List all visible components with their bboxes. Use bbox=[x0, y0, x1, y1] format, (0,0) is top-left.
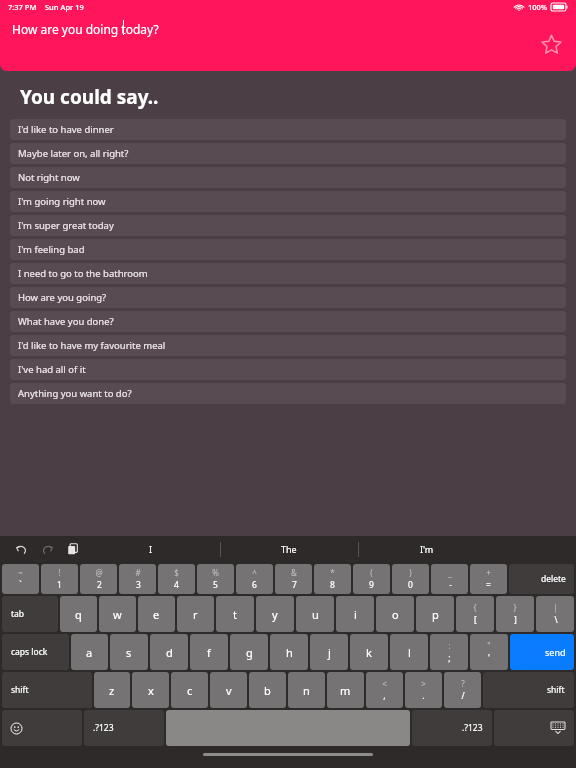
button[interactable]: How are you going? bbox=[10, 287, 566, 308]
button[interactable]: x bbox=[132, 672, 169, 708]
button[interactable]: < bbox=[366, 672, 403, 708]
button[interactable]: y bbox=[256, 596, 294, 632]
staticText: + bbox=[486, 567, 491, 578]
button[interactable]: Not right now bbox=[10, 167, 566, 188]
button[interactable]: n bbox=[288, 672, 325, 708]
button[interactable]: + bbox=[470, 564, 507, 594]
button[interactable]: Favourite bbox=[536, 29, 566, 59]
button[interactable]: s bbox=[110, 634, 148, 670]
button[interactable]: # bbox=[119, 564, 156, 594]
staticText: = bbox=[486, 579, 491, 591]
button[interactable]: $ bbox=[158, 564, 195, 594]
staticText: / bbox=[461, 690, 465, 702]
staticText: h bbox=[286, 645, 293, 660]
staticText: x bbox=[148, 683, 154, 698]
button[interactable]: u bbox=[296, 596, 334, 632]
button[interactable]: e bbox=[138, 596, 175, 632]
button[interactable]: Paste bbox=[62, 538, 84, 560]
button[interactable]: p bbox=[416, 596, 454, 632]
button[interactable]: | bbox=[536, 596, 574, 632]
button[interactable]: r bbox=[177, 596, 214, 632]
button[interactable]: % bbox=[197, 564, 234, 594]
staticText: t bbox=[233, 607, 237, 622]
button[interactable]: I'm going right now bbox=[10, 191, 566, 212]
button[interactable]: d bbox=[150, 634, 188, 670]
button[interactable]: c bbox=[171, 672, 208, 708]
staticText: m bbox=[340, 683, 351, 698]
button[interactable]: k bbox=[350, 634, 388, 670]
button[interactable]: Redo bbox=[36, 538, 58, 560]
button[interactable]: Undo bbox=[10, 538, 32, 560]
button[interactable]: I'm super great today bbox=[10, 215, 566, 236]
button[interactable]: shift bbox=[2, 672, 92, 708]
button[interactable]: caps lock bbox=[2, 634, 69, 670]
button[interactable]: { bbox=[456, 596, 494, 632]
button[interactable]: q bbox=[60, 596, 97, 632]
button[interactable]: & bbox=[275, 564, 312, 594]
staticText: p bbox=[432, 607, 439, 622]
button[interactable]: j bbox=[310, 634, 348, 670]
button[interactable]: : bbox=[430, 634, 468, 670]
staticText: tab bbox=[11, 608, 25, 620]
button[interactable]: ^ bbox=[236, 564, 273, 594]
staticText: - bbox=[449, 579, 452, 591]
button[interactable]: } bbox=[496, 596, 534, 632]
button[interactable]: b bbox=[249, 672, 286, 708]
staticText: I'm bbox=[420, 543, 434, 555]
button[interactable]: I'd like to have dinner bbox=[10, 119, 566, 140]
button[interactable]: I'd like to have my favourite meal bbox=[10, 335, 566, 356]
button[interactable]: o bbox=[376, 596, 414, 632]
staticText: y bbox=[272, 607, 278, 622]
button[interactable]: I'm feeling bad bbox=[10, 239, 566, 260]
button[interactable]: v bbox=[210, 672, 247, 708]
staticText: [ bbox=[474, 614, 477, 626]
button[interactable]: f bbox=[190, 634, 228, 670]
button[interactable]: I've had all of it bbox=[10, 359, 566, 380]
button[interactable]: The bbox=[220, 536, 358, 562]
button[interactable]: g bbox=[230, 634, 268, 670]
button[interactable]: Maybe later on, all right? bbox=[10, 143, 566, 164]
staticText: < bbox=[382, 678, 387, 689]
button[interactable]: @ bbox=[80, 564, 117, 594]
button[interactable]: What have you done? bbox=[10, 311, 566, 332]
staticText: " bbox=[487, 640, 491, 651]
staticText: 3 bbox=[136, 579, 141, 591]
staticText: 1 bbox=[57, 579, 62, 591]
button[interactable]: ~ bbox=[2, 564, 39, 594]
button[interactable]: .?123 bbox=[412, 710, 492, 746]
button[interactable]: Anything you want to do? bbox=[10, 383, 566, 404]
staticText: v bbox=[226, 683, 232, 698]
button[interactable]: delete bbox=[509, 564, 574, 594]
button[interactable]: i bbox=[336, 596, 374, 632]
button[interactable]: " bbox=[470, 634, 508, 670]
button[interactable]: ) bbox=[392, 564, 429, 594]
staticText: u bbox=[312, 607, 319, 622]
staticText: a bbox=[86, 645, 93, 660]
staticText: g bbox=[246, 645, 253, 660]
button[interactable]: * bbox=[314, 564, 351, 594]
button[interactable]: I'm bbox=[358, 536, 496, 562]
button[interactable]: tab bbox=[2, 596, 58, 632]
button[interactable]: .?123 bbox=[84, 710, 164, 746]
button[interactable]: l bbox=[390, 634, 428, 670]
button[interactable] bbox=[2, 710, 82, 746]
button[interactable]: shift bbox=[483, 672, 574, 708]
button[interactable]: _ bbox=[431, 564, 468, 594]
button[interactable]: I need to go to the bathroom bbox=[10, 263, 566, 284]
button[interactable]: send bbox=[510, 634, 574, 670]
button[interactable]: ! bbox=[41, 564, 78, 594]
staticText: What have you done? bbox=[18, 315, 114, 328]
button[interactable]: m bbox=[327, 672, 364, 708]
button[interactable]: z bbox=[94, 672, 130, 708]
button[interactable]: > bbox=[405, 672, 442, 708]
button[interactable]: a bbox=[71, 634, 108, 670]
button[interactable]: I bbox=[81, 536, 220, 562]
button[interactable] bbox=[494, 710, 574, 746]
staticText: I'm feeling bad bbox=[18, 243, 85, 256]
button[interactable]: ? bbox=[444, 672, 481, 708]
button[interactable]: h bbox=[270, 634, 308, 670]
button[interactable]: ( bbox=[353, 564, 390, 594]
button[interactable]: t bbox=[216, 596, 254, 632]
button[interactable]: w bbox=[99, 596, 136, 632]
